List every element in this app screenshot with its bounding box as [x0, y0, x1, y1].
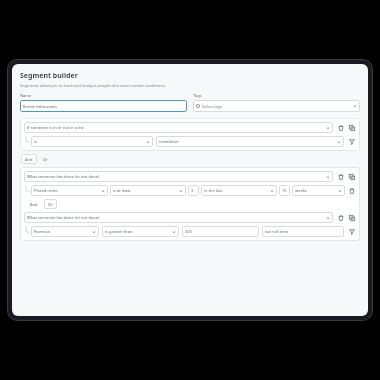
staticText: Segment builder: [20, 71, 78, 81]
button[interactable]: 16: [279, 185, 290, 196]
staticText: is: [34, 139, 37, 144]
staticText: is greater than: [105, 229, 133, 234]
button[interactable]: is greater than: [102, 226, 179, 237]
button[interactable]: Or: [44, 199, 57, 209]
button[interactable]: over all time: [262, 226, 344, 237]
staticText: 16: [282, 188, 287, 193]
staticText: And: [25, 157, 33, 162]
button[interactable]: What someone has done (or not done): [24, 171, 333, 182]
staticText: Name: [20, 93, 32, 98]
button[interactable]: And: [26, 199, 42, 209]
button[interactable]: newsletter: [156, 136, 344, 147]
staticText: If someone is in or not in a list: [27, 125, 84, 130]
button[interactable]: is at least: [110, 185, 186, 196]
staticText: Brand enthusiasts: [23, 104, 57, 109]
button[interactable]: Delete condition: [336, 213, 345, 222]
button[interactable]: What someone has done (or not done): [24, 212, 333, 223]
button[interactable]: Or: [39, 154, 52, 164]
staticText: 3: [191, 188, 194, 193]
staticText: weeks: [295, 188, 307, 193]
staticText: Segments allow you to track and analyze …: [20, 83, 166, 88]
button[interactable]: Delete sub-condition: [347, 186, 356, 195]
staticText: is at least: [113, 188, 131, 193]
staticText: Select tags: [202, 104, 223, 109]
button[interactable]: Placed order: [31, 185, 108, 196]
button[interactable]: Revenue: [31, 226, 99, 237]
staticText: Or: [43, 157, 48, 162]
staticText: Or: [48, 202, 53, 207]
button[interactable]: Filter condition: [347, 227, 356, 236]
staticText: What someone has done (or not done): [27, 174, 100, 179]
button[interactable]: 300: [182, 226, 259, 237]
button[interactable]: Duplicate condition: [347, 123, 356, 132]
button[interactable]: Filter condition: [347, 137, 356, 146]
button[interactable]: If someone is in or not in a list: [24, 122, 333, 133]
button[interactable]: Select tags: [193, 100, 360, 112]
staticText: Placed order: [34, 188, 58, 193]
staticText: 300: [185, 229, 192, 234]
button[interactable]: Duplicate condition: [347, 172, 356, 181]
button[interactable]: Delete condition: [336, 123, 345, 132]
staticText: Revenue: [34, 229, 51, 234]
staticText: over all time: [265, 229, 289, 234]
button[interactable]: 3: [188, 185, 199, 196]
button[interactable]: Delete condition: [336, 172, 345, 181]
staticText: in the last: [204, 188, 223, 193]
button[interactable]: Brand enthusiasts: [20, 100, 187, 112]
staticText: Tags: [193, 93, 202, 98]
staticText: newsletter: [159, 139, 179, 144]
button[interactable]: is: [31, 136, 153, 147]
button[interactable]: in the last: [201, 185, 277, 196]
staticText: What someone has done (or not done): [27, 215, 100, 220]
staticText: And: [30, 202, 38, 207]
button[interactable]: weeks: [292, 185, 345, 196]
button[interactable]: Duplicate condition: [347, 213, 356, 222]
button[interactable]: And: [21, 154, 37, 164]
